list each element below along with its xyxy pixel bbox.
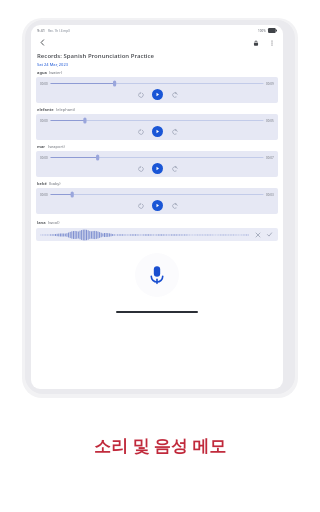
staticText: 00:00 [40, 82, 48, 86]
staticText: (wool) [48, 220, 60, 225]
button[interactable]: Play [152, 163, 163, 174]
staticText: agua [37, 70, 47, 75]
staticText: bebé [37, 181, 47, 186]
button[interactable]: 00:00 [36, 188, 278, 214]
button[interactable]: Rewind [136, 164, 145, 173]
button[interactable]: Forward [170, 164, 179, 173]
button[interactable]: Rewind [136, 127, 145, 136]
staticText: 100% [258, 29, 266, 33]
staticText: 00:00 [40, 193, 48, 197]
button[interactable]: 00:00 [36, 114, 278, 140]
staticText: 00:03 [266, 193, 274, 197]
button[interactable]: Discard recording [253, 230, 262, 239]
staticText: 00:07 [266, 156, 274, 160]
button[interactable]: More options [266, 37, 277, 48]
staticText: 00:09 [266, 82, 274, 86]
button[interactable]: Back [37, 37, 48, 48]
button[interactable]: Rewind [136, 201, 145, 210]
button[interactable]: 00:00 [36, 77, 278, 103]
staticText: 00:00 [40, 119, 48, 123]
staticText: 00:00 [40, 156, 48, 160]
button[interactable]: Play [152, 126, 163, 137]
staticText: mar [37, 144, 46, 149]
button[interactable]: Play [152, 89, 163, 100]
staticText: (seaport) [48, 144, 65, 149]
button[interactable]: 00:00 [36, 151, 278, 177]
staticText: Records: Spanish Pronunciation Practice [37, 52, 155, 60]
staticText: lana [37, 220, 46, 225]
button[interactable]: Forward [170, 90, 179, 99]
staticText: 00:05 [266, 119, 274, 123]
staticText: Sat 24 Mar, 2023 [37, 62, 68, 67]
button[interactable]: Forward [170, 201, 179, 210]
button[interactable]: Record voice memo [135, 253, 179, 297]
staticText: 소리 및 음성 메모 [94, 434, 227, 457]
staticText: 9:41 [37, 28, 45, 33]
button[interactable]: Forward [170, 127, 179, 136]
staticText: (baby) [49, 181, 61, 186]
button[interactable]: Rewind [136, 90, 145, 99]
staticText: elefante [37, 107, 54, 112]
button[interactable]: Save recording [265, 230, 274, 239]
staticText: Rec. 1h / 4 mp3 [48, 29, 70, 33]
button[interactable]: Play [152, 200, 163, 211]
staticText: (elephant) [56, 107, 76, 112]
button[interactable]: Lock [250, 37, 261, 48]
button[interactable]: Discard recording [36, 228, 278, 241]
staticText: (water) [49, 70, 63, 75]
